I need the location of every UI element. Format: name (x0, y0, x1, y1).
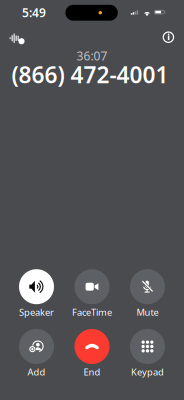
button[interactable]: Audio source (2, 27, 32, 51)
staticText: 36:07 (76, 48, 107, 64)
staticText: Keypad (131, 366, 164, 378)
staticText: FaceTime (72, 306, 112, 318)
staticText: Mute (136, 306, 158, 318)
button[interactable]: Speaker (10, 269, 62, 330)
button[interactable]: Keypad (121, 329, 173, 389)
staticText: 5:49 (22, 4, 46, 20)
button[interactable]: Add (10, 329, 62, 389)
staticText: Speaker (19, 306, 54, 318)
button[interactable]: Mute (121, 269, 173, 330)
button[interactable]: FaceTime (66, 269, 118, 330)
staticText: Add (27, 366, 45, 378)
button[interactable]: Call details (155, 26, 181, 48)
staticText: (866) 472-4001 (11, 59, 168, 89)
staticText: End (83, 366, 100, 378)
button[interactable]: End (66, 329, 118, 389)
